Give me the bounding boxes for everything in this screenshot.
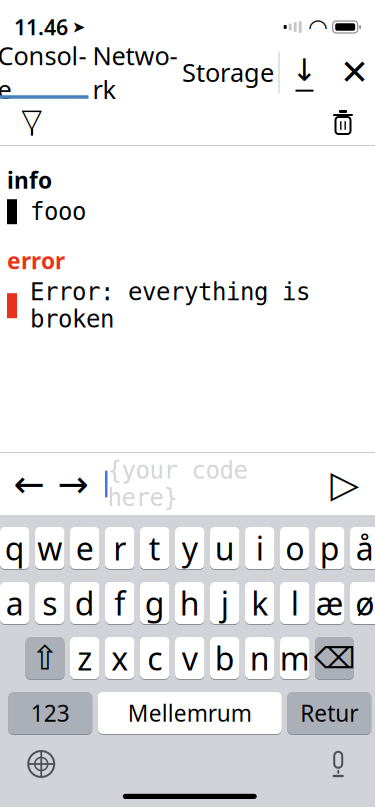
button[interactable]: e — [70, 526, 99, 570]
button[interactable]: Shift — [25, 636, 64, 680]
staticText: w — [37, 527, 62, 569]
staticText: Retur — [300, 698, 358, 728]
button[interactable]: n — [245, 636, 274, 680]
staticText: a — [6, 582, 24, 624]
button[interactable]: Filter — [4, 99, 60, 145]
button[interactable]: Retur — [287, 691, 371, 735]
button[interactable]: Mellemrum — [98, 691, 282, 735]
button[interactable]: z — [70, 636, 99, 680]
staticText: ✕ — [340, 53, 369, 92]
button[interactable]: r — [105, 526, 134, 570]
staticText: Console — [0, 39, 86, 106]
staticText: → — [57, 463, 88, 505]
staticText: ▽ — [21, 103, 42, 134]
staticText: j — [221, 582, 229, 624]
button[interactable]: Delete — [315, 636, 354, 680]
staticText: y — [182, 527, 198, 569]
staticText: 123 — [31, 698, 70, 728]
staticText: info — [7, 165, 52, 195]
button[interactable]: Run — [321, 459, 369, 509]
button[interactable]: q — [0, 526, 29, 570]
button[interactable]: m — [280, 636, 309, 680]
staticText: ➤ — [72, 18, 85, 36]
button[interactable]: ø — [350, 581, 375, 625]
staticText: Network — [92, 39, 177, 106]
button[interactable]: k — [245, 581, 274, 625]
button[interactable]: v — [175, 636, 204, 680]
button[interactable]: i — [245, 526, 274, 570]
staticText: i — [256, 527, 264, 569]
button[interactable]: y — [175, 526, 204, 570]
staticText: o — [285, 527, 304, 569]
staticText: p — [320, 527, 340, 569]
staticText: f — [114, 582, 125, 624]
button[interactable]: Dictate — [313, 743, 363, 785]
button[interactable]: Next — [51, 459, 95, 509]
button[interactable]: o — [280, 526, 309, 570]
button[interactable]: w — [35, 526, 64, 570]
staticText: x — [111, 637, 128, 679]
staticText: Mellemrum — [128, 698, 252, 728]
button[interactable]: Clear console — [315, 99, 371, 145]
staticText: ◠ — [309, 14, 326, 40]
staticText: k — [251, 582, 268, 624]
staticText: ↓ — [291, 53, 317, 88]
button[interactable]: c — [140, 636, 169, 680]
button[interactable]: d — [70, 581, 99, 625]
button[interactable]: j — [210, 581, 239, 625]
staticText: b — [215, 637, 235, 679]
button[interactable]: f — [105, 581, 134, 625]
staticText: ← — [13, 463, 44, 505]
staticText: å — [356, 527, 374, 569]
button[interactable]: å — [350, 526, 375, 570]
staticText: z — [77, 637, 92, 679]
button[interactable]: b — [210, 636, 239, 680]
staticText: n — [250, 637, 270, 679]
button[interactable]: x — [105, 636, 134, 680]
staticText: q — [5, 527, 25, 569]
staticText: ⌫ — [314, 641, 355, 675]
staticText: Storage — [182, 55, 274, 89]
button[interactable]: l — [280, 581, 309, 625]
staticText: s — [42, 582, 57, 624]
button[interactable]: s — [35, 581, 64, 625]
button[interactable]: Close — [329, 49, 375, 95]
staticText: l — [291, 582, 299, 624]
staticText: fooo — [30, 198, 86, 225]
staticText: ⇧ — [31, 639, 59, 677]
staticText: c — [147, 637, 162, 679]
staticText: ø — [355, 582, 374, 624]
button[interactable]: Console — [0, 49, 88, 95]
button[interactable]: a — [0, 581, 29, 625]
button[interactable]: Storage — [181, 49, 274, 95]
staticText: v — [182, 637, 198, 679]
button[interactable]: h — [175, 581, 204, 625]
button[interactable]: g — [140, 581, 169, 625]
button[interactable]: Next keyboard — [16, 743, 66, 785]
button[interactable]: 123 — [8, 691, 92, 735]
staticText: m — [280, 637, 310, 679]
staticText: t — [149, 527, 161, 569]
button[interactable]: Network — [88, 49, 181, 95]
staticText: g — [145, 582, 165, 624]
staticText: h — [180, 582, 200, 624]
staticText: {your code here} — [107, 457, 247, 511]
button[interactable]: t — [140, 526, 169, 570]
button[interactable]: æ — [315, 581, 344, 625]
button[interactable]: Download logs — [279, 49, 329, 95]
staticText: u — [215, 527, 235, 569]
staticText: error — [7, 245, 65, 275]
staticText: e — [76, 527, 94, 569]
staticText: æ — [316, 582, 344, 624]
button[interactable]: p — [315, 526, 344, 570]
staticText: d — [75, 582, 95, 624]
staticText: r — [113, 527, 126, 569]
staticText: Error: everything is broken — [30, 278, 310, 333]
button[interactable]: u — [210, 526, 239, 570]
staticText: 11.46 — [14, 13, 68, 41]
staticText: ▷ — [330, 463, 359, 505]
button[interactable]: Previous — [7, 459, 51, 509]
